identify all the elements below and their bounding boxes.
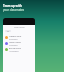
- staticText: 8 members: [9, 38, 18, 40]
- button[interactable]: History notes: [3, 40, 35, 46]
- button[interactable]: All: [7, 30, 9, 32]
- button[interactable]: Algebra study: [3, 34, 35, 40]
- staticText: All: [7, 30, 9, 32]
- staticText: Study Group: [14, 26, 25, 28]
- staticText: Team up with: [3, 4, 22, 8]
- staticText: Bio lab group: [9, 47, 21, 50]
- staticText: 12 members: [9, 50, 19, 52]
- staticText: your classmates: [3, 8, 25, 12]
- staticText: Algebra study: [9, 35, 22, 38]
- staticText: History notes: [9, 41, 21, 44]
- staticText: 4 members: [9, 44, 18, 46]
- button[interactable]: Bio lab group: [3, 46, 35, 52]
